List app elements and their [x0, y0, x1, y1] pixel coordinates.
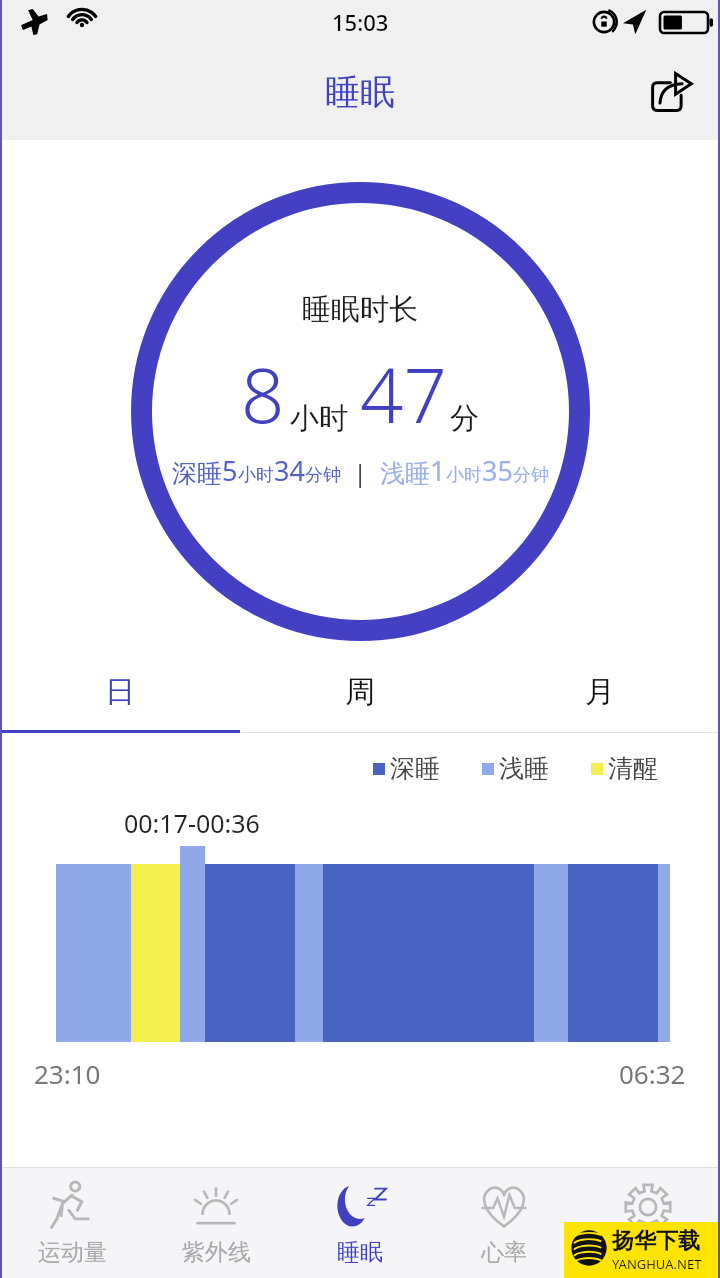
staticText: 8 [241, 342, 285, 446]
button[interactable]: 运动量 [0, 1168, 144, 1278]
staticText: 清醒 [608, 753, 658, 784]
staticText: 小时 [238, 464, 274, 487]
button[interactable]: 紫外线 [144, 1168, 288, 1278]
staticText: 深睡 [390, 753, 440, 784]
button[interactable]: 心率 [432, 1168, 576, 1278]
staticText: 运动量 [38, 1238, 107, 1267]
staticText: 小时 [446, 464, 482, 487]
staticText: 分 [450, 400, 479, 437]
staticText: 扬华下载 [612, 1227, 700, 1255]
button[interactable]: 设置 [576, 1168, 720, 1278]
staticText: YANGHUA.NET [612, 1255, 702, 1273]
staticText: 分钟 [305, 464, 341, 487]
staticText: 深睡 [172, 458, 222, 489]
staticText: 紫外线 [182, 1238, 251, 1267]
button[interactable]: 分享 [640, 61, 702, 123]
staticText: 睡眠时长 [302, 291, 418, 328]
staticText: 周 [345, 673, 375, 711]
staticText: 1 [430, 452, 446, 489]
button[interactable]: 月 [480, 651, 720, 733]
staticText: 小时 [290, 400, 348, 437]
staticText: 15:03 [332, 7, 389, 37]
staticText: 心率 [481, 1238, 527, 1267]
staticText: 月 [585, 673, 615, 711]
staticText: 睡眠 [337, 1238, 383, 1267]
staticText: 06:32 [619, 1056, 686, 1091]
staticText: 00:17-00:36 [124, 806, 260, 840]
staticText: 睡眠 [325, 70, 395, 114]
staticText: | [341, 456, 380, 489]
button[interactable]: 周 [240, 651, 480, 733]
staticText: 日 [105, 673, 135, 711]
staticText: 35 [482, 452, 513, 489]
button[interactable]: 日 [0, 651, 240, 733]
staticText: 分钟 [513, 464, 549, 487]
staticText: 浅睡 [499, 753, 549, 784]
staticText: 浅睡 [380, 458, 430, 489]
staticText: 设置 [625, 1238, 671, 1267]
button[interactable]: 睡眠 [288, 1168, 432, 1278]
staticText: 47 [360, 342, 447, 446]
staticText: 34 [274, 452, 305, 489]
staticText: 5 [222, 452, 238, 489]
staticText: 23:10 [34, 1056, 101, 1091]
